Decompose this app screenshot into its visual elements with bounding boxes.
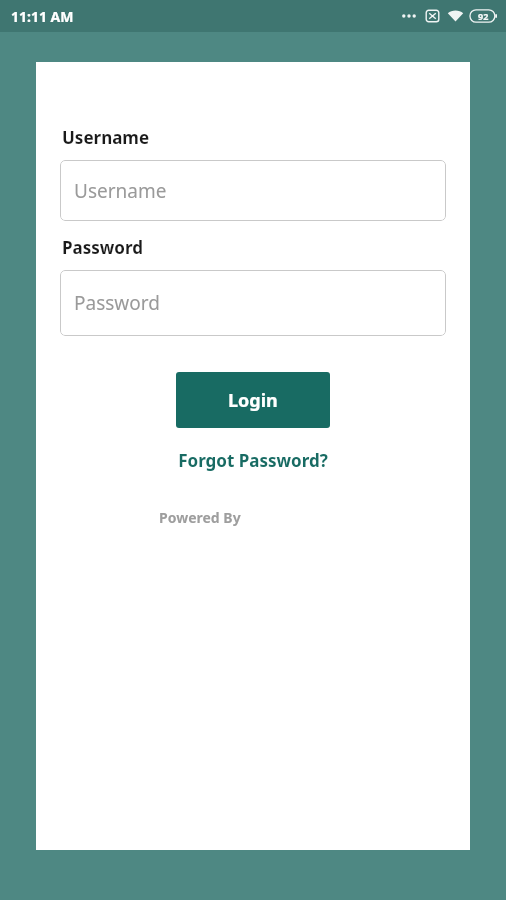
- staticText: Forgot Password?: [178, 449, 328, 472]
- button[interactable]: Password: [60, 270, 446, 336]
- staticText: 11:11 AM: [11, 7, 74, 26]
- staticText: Login: [228, 388, 278, 413]
- staticText: 92: [478, 10, 489, 22]
- staticText: Powered By: [159, 508, 241, 527]
- staticText: Username: [62, 126, 150, 149]
- staticText: Password: [62, 236, 143, 259]
- button[interactable]: Login: [176, 372, 330, 428]
- staticText: Password: [74, 290, 160, 316]
- staticText: Username: [74, 178, 167, 204]
- button[interactable]: Username: [60, 160, 446, 221]
- button[interactable]: Forgot Password?: [170, 445, 336, 476]
